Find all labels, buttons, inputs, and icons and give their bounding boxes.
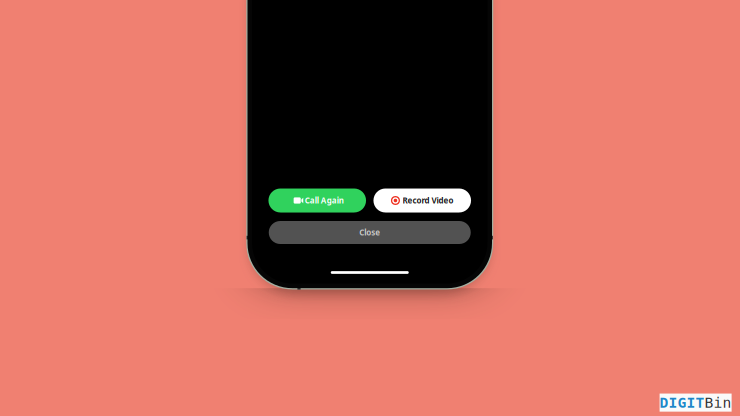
staticText: Close <box>359 227 380 238</box>
staticText: Call Again <box>305 195 344 206</box>
button[interactable]: Record Video <box>373 188 471 212</box>
staticText: Record Video <box>403 195 454 206</box>
button[interactable]: Close <box>269 221 471 244</box>
staticText: Bin <box>705 394 732 411</box>
staticText: DIGIT <box>660 394 705 411</box>
button[interactable]: Call Again <box>268 188 366 212</box>
